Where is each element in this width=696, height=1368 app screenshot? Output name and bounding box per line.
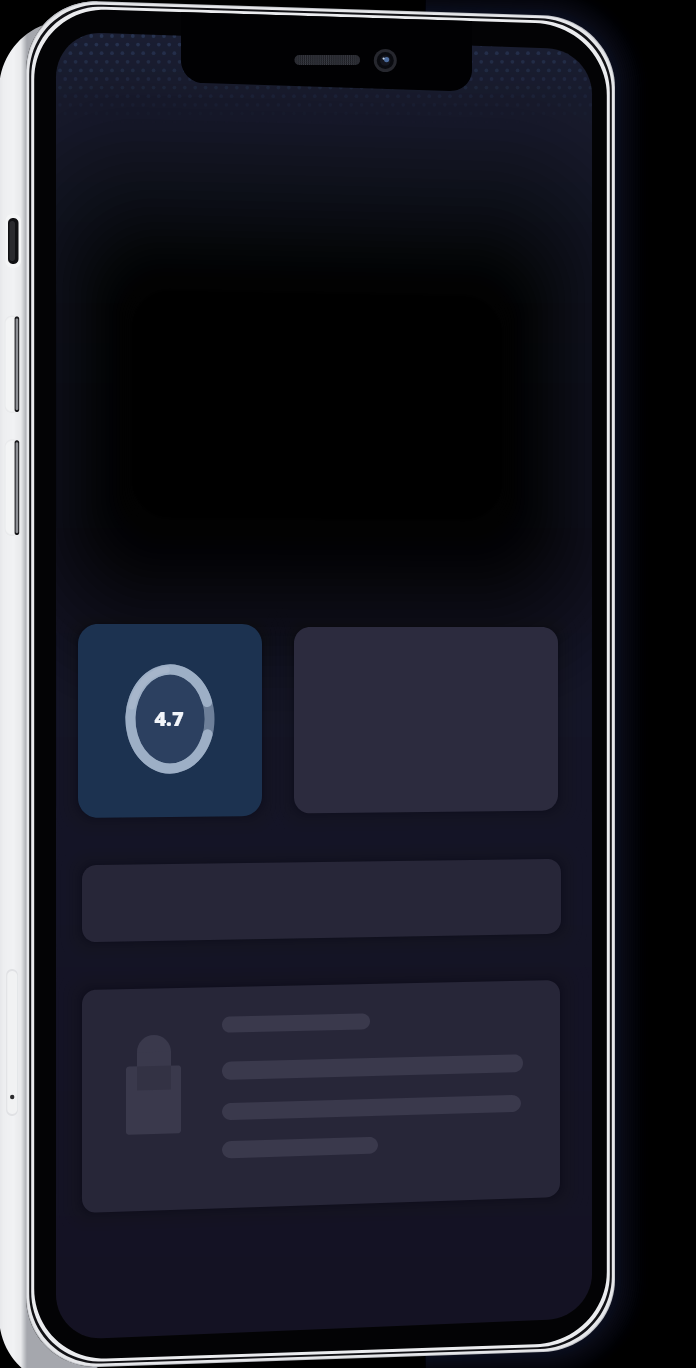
button[interactable]: 4.7 (124, 703, 214, 733)
other: Smartphone app preview (0, 0, 696, 1368)
staticText: 4.7 (154, 705, 184, 732)
